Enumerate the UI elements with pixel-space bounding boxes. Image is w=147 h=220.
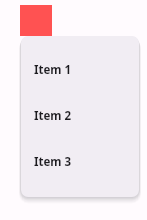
button[interactable]: Item 2 xyxy=(21,104,139,127)
button[interactable]: Item 1 xyxy=(21,58,139,81)
staticText: Item 2 xyxy=(34,108,72,124)
button[interactable]: Item 3 xyxy=(21,150,139,173)
staticText: Item 1 xyxy=(34,62,72,78)
staticText: Item 3 xyxy=(34,154,72,170)
